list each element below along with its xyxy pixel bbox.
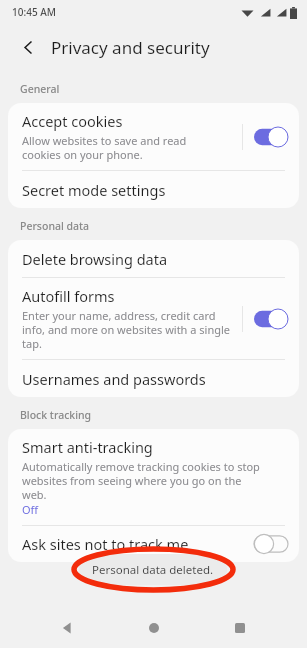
button[interactable]: Delete browsing data bbox=[8, 240, 299, 277]
staticText: Off bbox=[22, 502, 39, 517]
staticText: 10:45 AM bbox=[12, 5, 56, 19]
button[interactable]: Smart anti-tracking bbox=[8, 429, 299, 525]
button[interactable]: Home bbox=[134, 608, 174, 648]
button[interactable]: Secret mode settings bbox=[8, 171, 299, 208]
staticText: Delete browsing data bbox=[22, 249, 168, 269]
staticText: Smart anti-tracking bbox=[22, 437, 153, 457]
staticText: Secret mode settings bbox=[22, 180, 166, 200]
button[interactable]: Back bbox=[13, 32, 43, 62]
staticText: Autofill forms bbox=[22, 286, 115, 306]
button[interactable]: Autofill forms bbox=[8, 278, 299, 359]
staticText: Allow websites to save and read cookies … bbox=[22, 133, 187, 162]
staticText: Block tracking bbox=[20, 408, 92, 422]
button[interactable]: Ask sites not to track me bbox=[8, 526, 299, 562]
button[interactable]: On bbox=[254, 309, 288, 329]
button[interactable]: On bbox=[254, 127, 288, 147]
staticText: Privacy and security bbox=[51, 36, 210, 59]
staticText: Automatically remove tracking cookies to… bbox=[22, 459, 260, 502]
staticText: General bbox=[20, 82, 60, 96]
staticText: Personal data deleted. bbox=[92, 562, 214, 578]
button[interactable]: Recents bbox=[220, 608, 260, 648]
button[interactable]: Back bbox=[47, 608, 87, 648]
staticText: Enter your name, address, credit card in… bbox=[22, 308, 230, 351]
button[interactable]: Off bbox=[254, 534, 288, 554]
staticText: Personal data bbox=[20, 219, 90, 233]
button[interactable]: Usernames and passwords bbox=[8, 360, 299, 397]
staticText: Usernames and passwords bbox=[22, 369, 206, 389]
staticText: Ask sites not to track me bbox=[22, 534, 189, 554]
button[interactable]: Accept cookies bbox=[8, 103, 299, 170]
staticText: Accept cookies bbox=[22, 111, 123, 131]
